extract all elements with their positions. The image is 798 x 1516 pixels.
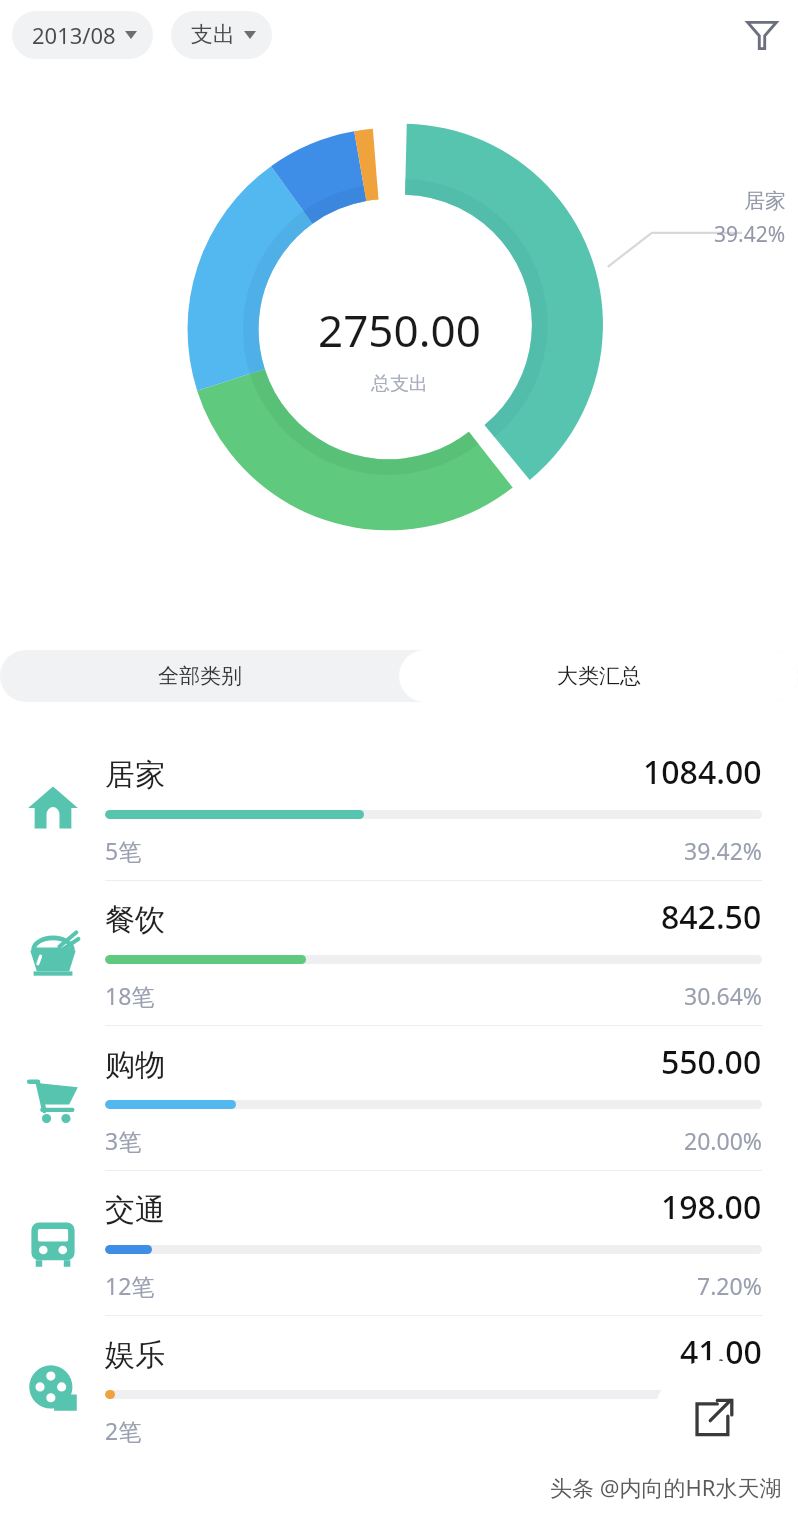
staticText: 支出 [191, 21, 235, 49]
staticText: 娱乐 [105, 1336, 165, 1374]
staticText: 大类汇总 [557, 663, 641, 689]
staticText: 842.50 [661, 895, 762, 939]
staticText: 30.64% [684, 980, 762, 1011]
staticText: 购物 [105, 1046, 165, 1084]
button[interactable]: Share [654, 1360, 770, 1476]
staticText: 550.00 [661, 1040, 762, 1084]
staticText: 41.00 [680, 1330, 762, 1374]
button[interactable]: Filter [738, 11, 786, 59]
staticText: 12笔 [105, 1270, 155, 1301]
staticText: 18笔 [105, 980, 155, 1011]
button[interactable]: 购物 [0, 1025, 798, 1170]
staticText: 1.49% [697, 1415, 762, 1446]
button[interactable]: 2013/08 [12, 11, 153, 59]
button[interactable]: 大类汇总 [399, 650, 798, 702]
staticText: 居家 [105, 756, 165, 794]
staticText: 餐饮 [105, 901, 165, 939]
staticText: 5笔 [105, 835, 142, 866]
staticText: 20.00% [684, 1125, 762, 1156]
button[interactable]: 居家 [0, 736, 798, 880]
staticText: 39.42% [714, 220, 786, 249]
button[interactable]: 娱乐 [0, 1315, 798, 1460]
staticText: 总支出 [371, 372, 428, 396]
staticText: 7.20% [697, 1270, 762, 1301]
button[interactable]: 全部类别 [0, 650, 399, 702]
staticText: 1084.00 [643, 750, 762, 794]
button[interactable]: 交通 [0, 1170, 798, 1315]
staticText: 198.00 [661, 1185, 762, 1229]
staticText: 2750.00 [318, 300, 481, 360]
staticText: 居家 [744, 188, 786, 214]
staticText: 3笔 [105, 1125, 142, 1156]
staticText: 全部类别 [158, 663, 242, 689]
button[interactable]: 支出 [171, 11, 272, 59]
staticText: 2笔 [105, 1415, 142, 1446]
staticText: 2013/08 [32, 20, 116, 50]
staticText: 交通 [105, 1191, 165, 1229]
button[interactable]: 餐饮 [0, 880, 798, 1025]
staticText: 头条 @内向的HR水天湖 [550, 1472, 782, 1502]
staticText: 39.42% [684, 835, 762, 866]
